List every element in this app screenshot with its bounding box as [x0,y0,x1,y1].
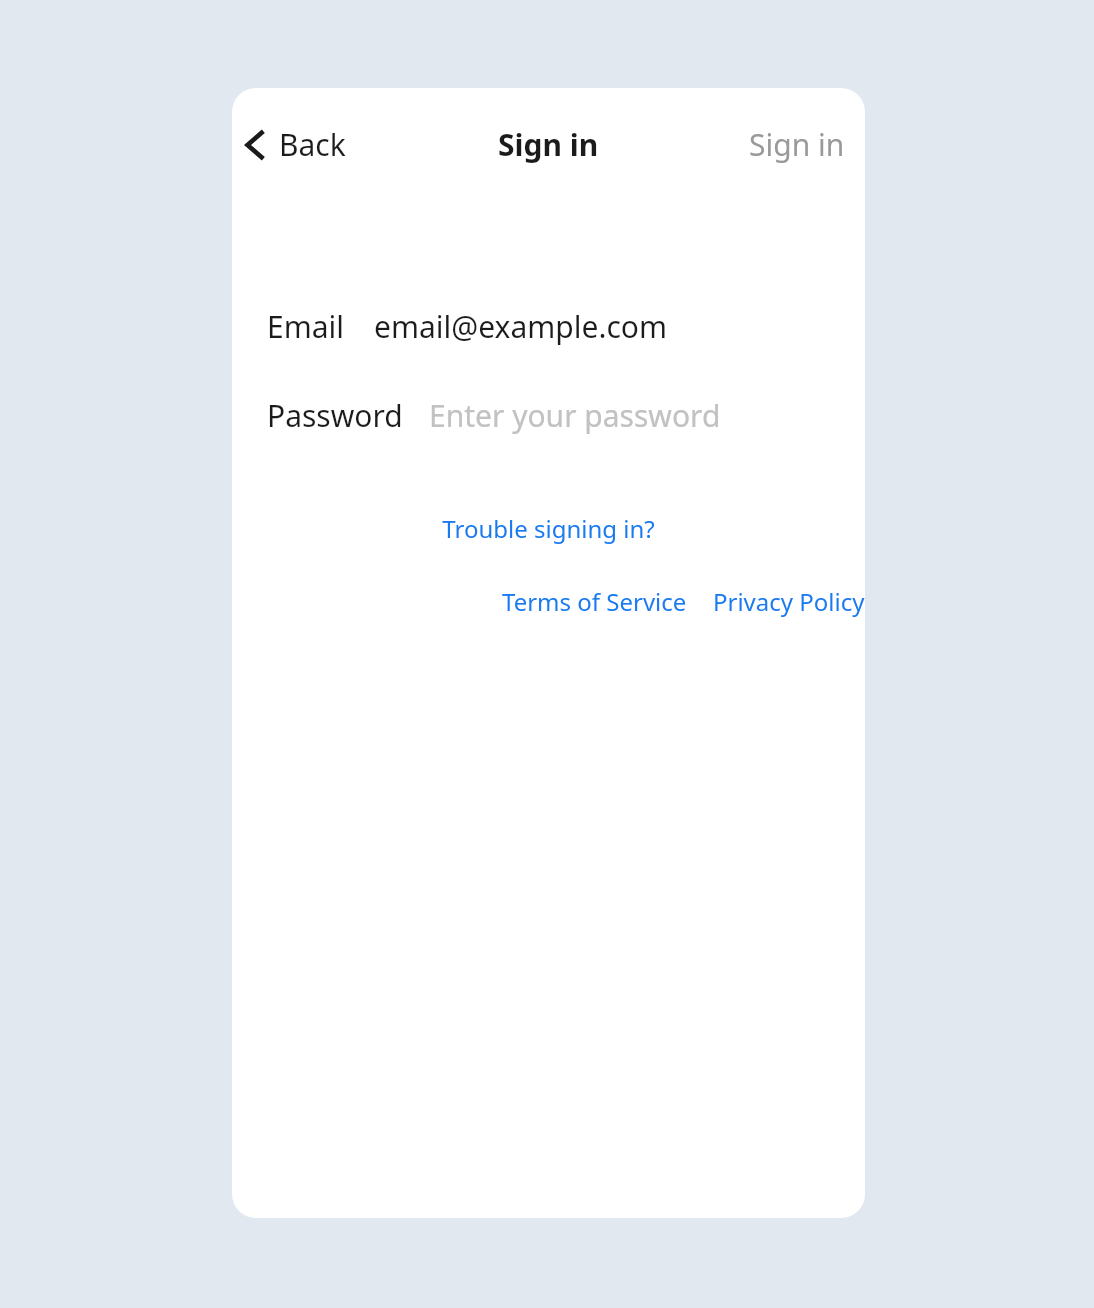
staticText: Email [267,306,345,347]
button[interactable]: Back [240,118,356,171]
button[interactable]: Password [232,387,865,444]
staticText: Sign in [749,124,845,165]
button[interactable]: Privacy Policy [709,579,865,624]
staticText: Privacy Policy [713,585,865,618]
button[interactable]: Trouble signing in? [434,506,663,551]
staticText: Trouble signing in? [442,512,655,545]
staticText: Back [279,124,346,165]
button[interactable]: Email [232,298,865,355]
staticText: email@example.com [374,306,668,347]
staticText: Password [267,395,403,436]
button[interactable]: Sign in [737,118,857,171]
staticText: Sign in [498,124,599,165]
staticText: Terms of Service [502,585,687,618]
button[interactable]: Terms of Service [498,579,691,624]
other: Back [244,128,266,162]
staticText: Enter your password [429,395,721,436]
